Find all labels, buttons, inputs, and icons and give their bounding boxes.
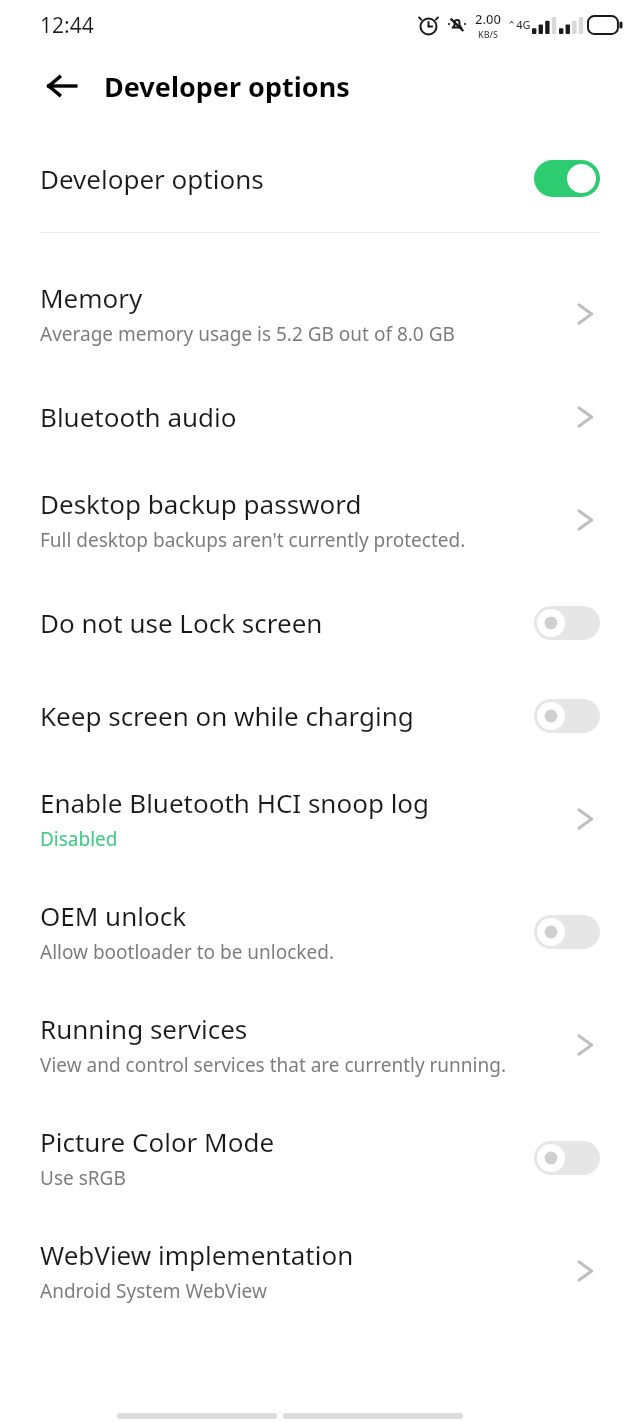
other: Open Running services [570, 1025, 600, 1065]
button[interactable]: OEM unlock [0, 875, 640, 988]
staticText: 2.00 [475, 10, 501, 28]
staticText: OEM unlock [40, 898, 187, 933]
staticText: Allow bootloader to be unlocked. [40, 939, 334, 965]
staticText: Full desktop backups aren't currently pr… [40, 527, 466, 553]
button[interactable]: Picture Color Mode [0, 1101, 640, 1214]
button[interactable]: Desktop backup password [0, 463, 640, 576]
staticText: Running services [40, 1011, 248, 1046]
button[interactable]: Enable Bluetooth HCI snoop log [0, 762, 640, 875]
staticText: Memory [40, 280, 143, 315]
button[interactable]: Do not use Lock screen [0, 576, 640, 669]
button[interactable]: Running services [0, 988, 640, 1101]
other: Open Memory [570, 294, 600, 334]
staticText: Bluetooth audio [40, 399, 237, 434]
button[interactable]: Bluetooth audio [0, 370, 640, 463]
staticText: Use sRGB [40, 1165, 126, 1191]
other: Open Enable Bluetooth HCI snoop log [570, 799, 600, 839]
button[interactable]: Back [40, 64, 84, 108]
other: Open Bluetooth audio [570, 397, 600, 437]
button[interactable]: Keep screen on while charging [0, 669, 640, 762]
staticText: Android System WebView [40, 1278, 267, 1304]
staticText: KB/S [478, 28, 498, 40]
staticText: Picture Color Mode [40, 1124, 275, 1159]
button[interactable]: WebView implementation [0, 1214, 640, 1327]
other: Open Desktop backup password [570, 500, 600, 540]
button[interactable]: Developer options [0, 138, 640, 218]
staticText: Enable Bluetooth HCI snoop log [40, 785, 430, 820]
staticText: Disabled [40, 826, 118, 852]
staticText: ⌃4G [507, 17, 531, 32]
staticText: Average memory usage is 5.2 GB out of 8.… [40, 321, 455, 347]
staticText: Desktop backup password [40, 486, 362, 521]
staticText: Developer options [40, 161, 534, 196]
staticText: View and control services that are curre… [40, 1052, 507, 1078]
staticText: 12:44 [40, 11, 94, 40]
button[interactable]: Memory [0, 257, 640, 370]
staticText: Developer options [104, 68, 350, 105]
staticText: Keep screen on while charging [40, 698, 414, 733]
staticText: WebView implementation [40, 1237, 354, 1272]
other: Open WebView implementation [570, 1251, 600, 1291]
staticText: Do not use Lock screen [40, 605, 323, 640]
